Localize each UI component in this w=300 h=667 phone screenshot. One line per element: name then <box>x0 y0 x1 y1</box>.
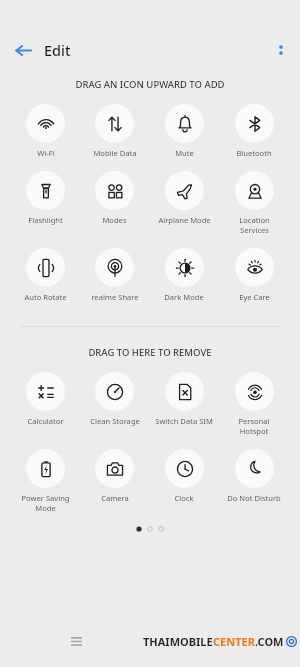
staticText: Location Services <box>239 215 270 235</box>
button[interactable]: realme Share <box>80 248 149 302</box>
staticText: Mute <box>175 148 194 158</box>
button[interactable]: Camera <box>80 449 149 503</box>
button[interactable]: Bluetooth <box>219 104 289 158</box>
staticText: Clock <box>174 493 194 503</box>
staticText: Eye Care <box>239 292 270 302</box>
staticText: Bluetooth <box>236 148 272 158</box>
button[interactable]: Calculator <box>11 372 80 426</box>
staticText: Mobile Data <box>93 148 137 158</box>
staticText: Switch Data SIM <box>155 416 213 426</box>
staticText: Calculator <box>27 416 64 426</box>
button[interactable]: Clean Storage <box>80 372 149 426</box>
staticText: Clean Storage <box>90 416 140 426</box>
staticText: Edit <box>44 40 71 60</box>
button[interactable]: Mute <box>149 104 219 158</box>
staticText: CENTER <box>213 634 255 649</box>
button[interactable]: Location Services <box>219 171 289 235</box>
staticText: Power Saving Mode <box>21 493 70 513</box>
staticText: Camera <box>101 493 129 503</box>
staticText: Auto Rotate <box>24 292 67 302</box>
button[interactable]: Back <box>8 36 38 64</box>
staticText: realme Share <box>91 292 139 302</box>
button[interactable]: Power Saving Mode <box>11 449 80 513</box>
button[interactable]: Eye Care <box>219 248 289 302</box>
staticText: .COM <box>255 634 284 649</box>
button[interactable]: More options <box>267 36 295 64</box>
button[interactable]: Mobile Data <box>80 104 149 158</box>
staticText: Flashlight <box>28 215 63 225</box>
button[interactable]: Menu <box>62 627 90 655</box>
button[interactable]: Dark Mode <box>149 248 219 302</box>
button[interactable]: Auto Rotate <box>11 248 80 302</box>
button[interactable]: Modes <box>80 171 149 225</box>
staticText: Dark Mode <box>164 292 204 302</box>
button[interactable]: Personal Hotspot <box>219 372 289 436</box>
button[interactable]: Switch Data SIM <box>149 372 219 426</box>
staticText: Wi-Fi <box>37 148 55 158</box>
staticText: THAIMOBILE <box>143 634 213 649</box>
staticText: DRAG TO HERE TO REMOVE <box>0 346 300 359</box>
staticText: Do Not Disturb <box>227 493 281 503</box>
button[interactable]: Flashlight <box>11 171 80 225</box>
button[interactable]: Airplane Mode <box>149 171 219 225</box>
staticText: DRAG AN ICON UPWARD TO ADD <box>0 78 300 91</box>
button[interactable]: Clock <box>149 449 219 503</box>
staticText: Personal Hotspot <box>238 416 270 436</box>
button[interactable]: Do Not Disturb <box>219 449 289 503</box>
staticText: Modes <box>102 215 127 225</box>
staticText: Airplane Mode <box>158 215 211 225</box>
button[interactable]: Wi-Fi <box>11 104 80 158</box>
